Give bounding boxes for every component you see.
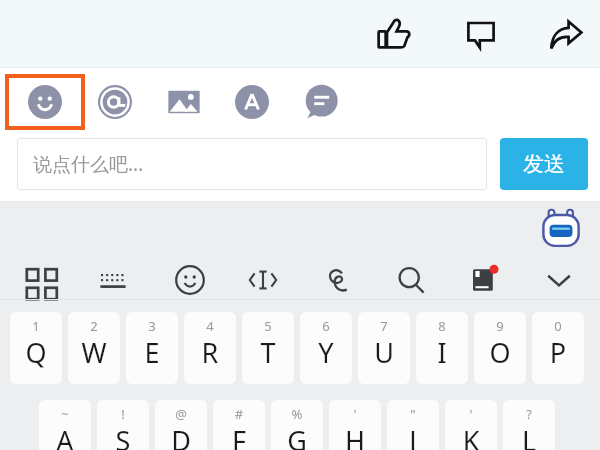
staticText: P (532, 334, 584, 371)
staticText: ? (503, 405, 555, 423)
staticText: 2 (68, 317, 120, 335)
staticText: 4 (184, 317, 236, 335)
button[interactable]: 4 (184, 312, 236, 384)
staticText: ' (329, 405, 381, 423)
button[interactable]: ! (97, 400, 149, 450)
staticText: 3 (126, 317, 178, 335)
staticText: 发送 (523, 151, 565, 177)
staticText: D (155, 422, 207, 450)
button[interactable]: ? (503, 400, 555, 450)
staticText: R (184, 334, 236, 371)
button[interactable]: Input method (539, 208, 583, 252)
staticText: ~ (39, 405, 91, 423)
staticText: E (126, 334, 178, 371)
button[interactable]: Cursor (239, 256, 287, 304)
button[interactable]: Comment (457, 11, 505, 59)
button[interactable]: @ (155, 400, 207, 450)
staticText: H (329, 422, 381, 450)
button[interactable]: 9 (474, 312, 526, 384)
staticText: " (387, 405, 439, 423)
staticText: G (271, 422, 323, 450)
button[interactable]: " (387, 400, 439, 450)
staticText: # (213, 405, 265, 423)
button[interactable]: Quick reply (293, 74, 349, 130)
staticText: ! (97, 405, 149, 423)
staticText: 8 (416, 317, 468, 335)
staticText: 7 (358, 317, 410, 335)
button[interactable]: 5 (242, 312, 294, 384)
staticText: O (474, 334, 526, 371)
staticText: U (358, 334, 410, 371)
button[interactable]: 说点什么吧... (17, 138, 487, 190)
button[interactable]: 7 (358, 312, 410, 384)
staticText: A (39, 422, 91, 450)
staticText: Q (10, 334, 62, 371)
button[interactable]: ' (329, 400, 381, 450)
staticText: Y (300, 334, 352, 371)
staticText: 5 (242, 317, 294, 335)
staticText: 6 (300, 317, 352, 335)
button[interactable]: ' (445, 400, 497, 450)
button[interactable]: Keyboard (89, 256, 137, 304)
button[interactable]: Emoji (5, 74, 85, 130)
staticText: % (271, 405, 323, 423)
staticText: T (242, 334, 294, 371)
button[interactable]: Text style (224, 74, 280, 130)
staticText: ' (445, 405, 497, 423)
button[interactable]: 6 (300, 312, 352, 384)
staticText: 1 (10, 317, 62, 335)
staticText: J (387, 422, 439, 450)
button[interactable]: 2 (68, 312, 120, 384)
staticText: L (503, 422, 555, 450)
button[interactable]: Emoji (166, 256, 214, 304)
button[interactable]: Mention (87, 74, 143, 130)
button[interactable]: ~ (39, 400, 91, 450)
button[interactable]: Search (387, 256, 435, 304)
button[interactable]: Like (370, 10, 418, 58)
button[interactable]: Notes (461, 256, 509, 304)
staticText: I (416, 334, 468, 371)
staticText: K (445, 422, 497, 450)
staticText: 0 (532, 317, 584, 335)
staticText: @ (155, 405, 207, 423)
button[interactable]: Grid (16, 256, 64, 304)
button[interactable]: % (271, 400, 323, 450)
button[interactable]: Image (156, 74, 212, 130)
button[interactable]: 1 (10, 312, 62, 384)
staticText: 9 (474, 317, 526, 335)
button[interactable]: Clipboard (312, 256, 360, 304)
button[interactable]: 3 (126, 312, 178, 384)
staticText: 说点什么吧... (33, 151, 144, 177)
button[interactable]: 发送 (500, 138, 588, 190)
button[interactable]: # (213, 400, 265, 450)
button[interactable]: Share (542, 11, 590, 59)
button[interactable]: 8 (416, 312, 468, 384)
button[interactable]: Hide keyboard (535, 256, 583, 304)
button[interactable]: 0 (532, 312, 584, 384)
staticText: F (213, 422, 265, 450)
staticText: S (97, 422, 149, 450)
staticText: W (68, 334, 120, 371)
